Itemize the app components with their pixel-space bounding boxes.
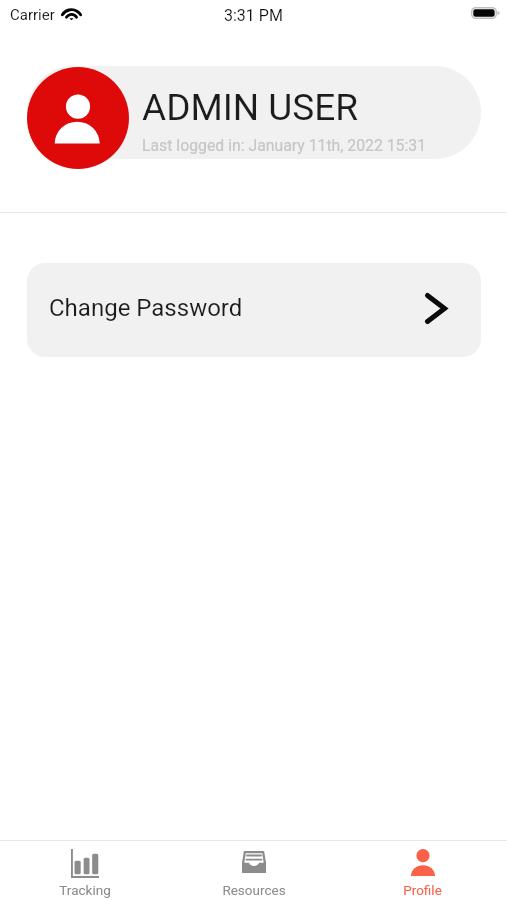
staticText: Tracking [59,882,111,898]
staticText: 3:31 PM [224,6,283,25]
button[interactable]: Resources [169,841,338,900]
staticText: ADMIN USER [142,86,359,129]
staticText: Resources [222,882,286,898]
button[interactable]: ADMIN USER [27,66,481,169]
staticText: Last logged in: January 11th, 2022 15:31 [142,136,427,155]
staticText: Carrier [10,6,55,24]
button[interactable]: Profile [338,841,507,900]
staticText: Profile [403,882,442,898]
button[interactable]: Change Password [27,263,481,357]
button[interactable]: Tracking [0,841,169,900]
staticText: Change Password [49,294,243,322]
